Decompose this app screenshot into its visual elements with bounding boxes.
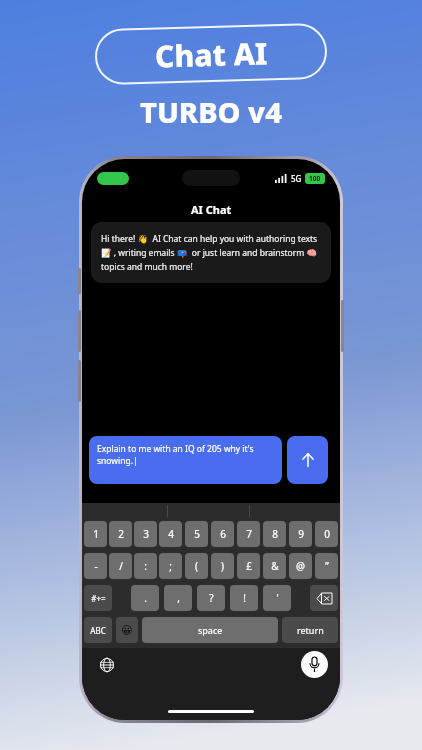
button[interactable]: 9 (289, 521, 312, 547)
button[interactable]: @ (289, 553, 312, 579)
staticText: & (271, 559, 279, 573)
button[interactable]: & (263, 553, 286, 579)
button[interactable]: Dictate (301, 651, 328, 678)
staticText: 5G (291, 173, 302, 184)
button[interactable]: ! (230, 585, 258, 611)
button[interactable]: ) (211, 553, 234, 579)
button[interactable]: 1 (84, 521, 107, 547)
staticText: . (144, 591, 147, 605)
staticText: 9 (298, 527, 304, 541)
button[interactable]: 4 (159, 521, 182, 547)
button[interactable]: ? (197, 585, 225, 611)
staticText: ) (221, 559, 224, 573)
staticText: AI Chat (191, 202, 232, 217)
button[interactable]: ' (263, 585, 291, 611)
staticText: 2 (118, 527, 124, 541)
button[interactable]: return (282, 617, 338, 643)
staticText: - (94, 559, 98, 573)
button[interactable]: ( (185, 553, 208, 579)
staticText: ( (195, 559, 198, 573)
staticText: / (119, 559, 123, 573)
staticText: £ (246, 559, 252, 573)
button[interactable]: 0 (315, 521, 338, 547)
button[interactable]: , (164, 585, 192, 611)
button[interactable]: . (131, 585, 159, 611)
button[interactable]: 8 (263, 521, 286, 547)
staticText: : (144, 559, 147, 573)
staticText: 6 (220, 527, 226, 541)
staticText: ? (209, 591, 214, 605)
staticText: #+= (91, 593, 106, 604)
staticText: ABC (90, 625, 106, 636)
button[interactable]: Send (287, 436, 328, 484)
staticText: return (297, 624, 324, 636)
button[interactable]: 6 (211, 521, 234, 547)
staticText: 7 (246, 527, 252, 541)
staticText: ” (325, 559, 329, 573)
button[interactable]: Emoji (116, 617, 138, 643)
button[interactable]: ; (159, 553, 182, 579)
button[interactable]: £ (237, 553, 260, 579)
button[interactable]: - (84, 553, 107, 579)
button[interactable]: Explain to me with an IQ of 205 why it's… (89, 436, 282, 484)
staticText: Hi there! 👋 AI Chat can help you with au… (101, 233, 321, 272)
staticText: 5 (194, 527, 200, 541)
button[interactable]: 3 (134, 521, 157, 547)
staticText: TURBO v4 (140, 92, 282, 131)
staticText: space (198, 624, 223, 636)
button[interactable]: Backspace (310, 585, 338, 611)
button[interactable]: Change keyboard language (96, 654, 118, 676)
staticText: 1 (93, 527, 99, 541)
button[interactable]: 2 (109, 521, 132, 547)
button[interactable]: space (142, 617, 278, 643)
button[interactable]: : (134, 553, 157, 579)
staticText: @ (296, 559, 305, 573)
staticText: 😀 (121, 624, 133, 637)
button[interactable]: Chat AI (94, 23, 328, 85)
staticText: 4 (168, 527, 174, 541)
button[interactable]: #+= (84, 585, 112, 611)
staticText: Explain to me with an IQ of 205 why it's… (97, 443, 274, 467)
button[interactable]: Hi there! 👋 AI Chat can help you with au… (91, 222, 331, 283)
staticText: ; (169, 559, 172, 573)
staticText: Chat AI (154, 32, 269, 76)
staticText: , (177, 591, 180, 605)
staticText: ! (243, 591, 246, 605)
staticText: 3 (143, 527, 149, 541)
button[interactable]: ” (315, 553, 338, 579)
staticText: ' (276, 591, 279, 605)
staticText: 100 (309, 174, 321, 183)
button[interactable]: / (109, 553, 132, 579)
staticText: 0 (324, 527, 330, 541)
button[interactable]: 7 (237, 521, 260, 547)
button[interactable]: ABC (84, 617, 112, 643)
staticText: 8 (272, 527, 278, 541)
button[interactable]: 5 (185, 521, 208, 547)
